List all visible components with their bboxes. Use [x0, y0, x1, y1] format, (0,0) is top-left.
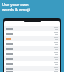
button[interactable] [4, 66, 60, 71]
button[interactable] [4, 51, 60, 56]
staticText: Use your own words & emoji [2, 2, 30, 12]
button[interactable] [4, 71, 60, 72]
button[interactable] [4, 41, 60, 46]
button[interactable] [4, 26, 60, 31]
button[interactable] [4, 31, 60, 36]
button[interactable] [4, 61, 60, 66]
button[interactable] [4, 36, 60, 41]
button[interactable] [4, 56, 60, 61]
button[interactable] [4, 46, 60, 51]
